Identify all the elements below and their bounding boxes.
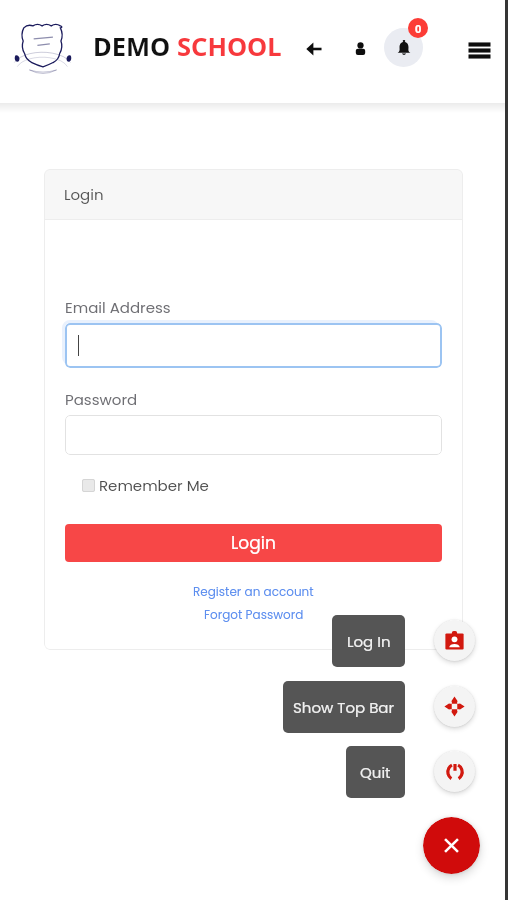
button[interactable]: Forgot Password xyxy=(204,606,304,623)
button[interactable]: Show Top Bar xyxy=(434,686,475,727)
staticText: Password xyxy=(65,389,138,410)
button[interactable]: Log In xyxy=(332,615,405,667)
staticText: 0 xyxy=(415,21,422,36)
button[interactable]: Back xyxy=(296,31,331,66)
button[interactable] xyxy=(65,415,442,455)
staticText: DEMO xyxy=(93,29,177,64)
button[interactable]: Account xyxy=(343,31,378,66)
staticText: Log In xyxy=(347,631,391,652)
button[interactable]: Log In xyxy=(434,620,475,661)
staticText: Login xyxy=(64,184,104,205)
button[interactable]: Register an account xyxy=(193,583,314,600)
staticText: Show Top Bar xyxy=(293,697,395,718)
button[interactable]: Show Top Bar xyxy=(283,681,405,733)
staticText: SCHOOL xyxy=(177,29,282,64)
staticText: Remember Me xyxy=(99,475,209,496)
button[interactable] xyxy=(65,323,442,368)
button[interactable]: Quit xyxy=(346,746,405,798)
button[interactable]: Menu xyxy=(462,33,496,67)
button[interactable]: Quit xyxy=(434,751,475,792)
button[interactable]: Close menu xyxy=(423,817,480,874)
staticText: Email Address xyxy=(65,297,171,318)
staticText: Quit xyxy=(360,762,391,783)
button[interactable]: Notifications xyxy=(384,28,423,67)
button[interactable]: Remember Me xyxy=(82,475,209,496)
button[interactable]: Login xyxy=(65,524,442,562)
staticText: Login xyxy=(231,531,276,555)
